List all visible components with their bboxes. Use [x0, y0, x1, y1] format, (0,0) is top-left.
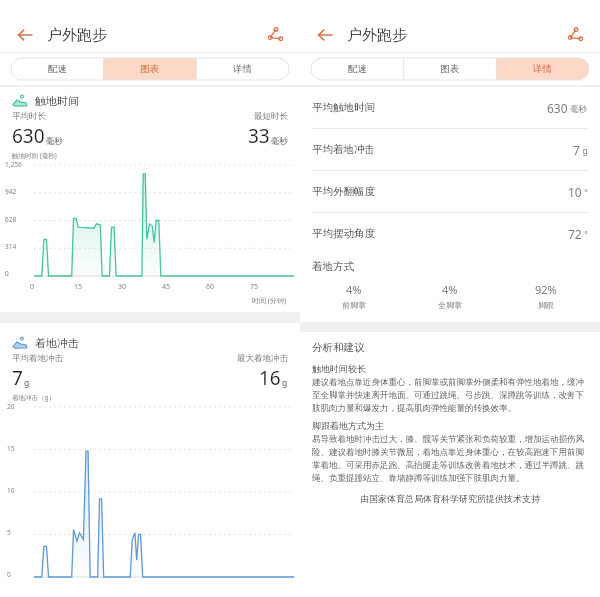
staticText: 30 — [118, 282, 127, 292]
staticText: 由国家体育总局体育科学研究所提供技术支持 — [312, 493, 588, 504]
staticText: 630 — [12, 123, 45, 149]
staticText: 触地时间较长 — [312, 363, 366, 374]
staticText: 平均着地冲击 — [312, 143, 375, 156]
staticText: 16 — [259, 365, 281, 391]
staticText: 图表 — [140, 63, 159, 75]
staticText: 户外跑步 — [347, 26, 407, 45]
staticText: 平均触地时间 — [312, 101, 375, 114]
staticText: 4% — [442, 282, 458, 297]
staticText: 1,256 — [5, 160, 22, 169]
staticText: 10 — [7, 486, 15, 495]
button[interactable]: 图表 — [103, 58, 196, 80]
staticText: 脚跟着地方式为主 — [312, 420, 384, 431]
staticText: 分析和建议 — [312, 341, 365, 354]
staticText: 5 — [7, 528, 11, 537]
button[interactable]: 平均外翻幅度 — [300, 171, 600, 213]
button[interactable]: 图表 — [403, 58, 496, 80]
staticText: 0 — [5, 269, 9, 278]
staticText: g — [580, 145, 588, 157]
staticText: 15 — [7, 444, 15, 453]
staticText: 平均时长 — [12, 111, 46, 122]
staticText: 户外跑步 — [47, 26, 107, 45]
button[interactable]: Share — [262, 22, 288, 48]
staticText: 628 — [5, 215, 17, 224]
staticText: 92% — [535, 282, 557, 297]
staticText: 图表 — [440, 63, 459, 75]
button[interactable]: 平均摆动角度 — [300, 213, 600, 254]
button[interactable]: 92% — [498, 282, 594, 310]
button[interactable]: 平均触地时间 — [300, 87, 600, 129]
staticText: 着地冲击（g） — [12, 393, 55, 402]
staticText: 着地方式 — [312, 260, 354, 273]
button[interactable]: 详情 — [496, 58, 589, 80]
staticText: 配速 — [348, 63, 367, 75]
staticText: 配速 — [48, 63, 67, 75]
staticText: 平均着地冲击 — [12, 353, 63, 364]
staticText: 全脚掌 — [438, 300, 462, 310]
staticText: 0 — [30, 282, 35, 292]
staticText: 毫秒 — [46, 136, 63, 147]
staticText: 45 — [162, 282, 171, 292]
staticText: 75 — [250, 282, 259, 292]
staticText: 0 — [7, 570, 11, 579]
staticText: 毫秒 — [568, 103, 588, 115]
staticText: 60 — [206, 282, 215, 292]
staticText: 33 — [248, 123, 270, 149]
staticText: 4% — [346, 282, 362, 297]
staticText: 前脚掌 — [342, 300, 366, 310]
button[interactable]: Back — [12, 22, 38, 48]
staticText: 最大着地冲击 — [237, 353, 288, 364]
staticText: 平均摆动角度 — [312, 227, 375, 240]
staticText: 最短时长 — [254, 111, 288, 122]
button[interactable]: 4% — [306, 282, 402, 310]
staticText: 20 — [7, 402, 15, 411]
button[interactable]: 详情 — [196, 58, 289, 80]
staticText: 7 — [573, 142, 580, 158]
staticText: 7 — [12, 365, 23, 391]
staticText: 15 — [74, 282, 83, 292]
staticText: g — [24, 377, 30, 389]
staticText: ° — [582, 229, 588, 241]
staticText: 脚跟 — [538, 300, 554, 310]
staticText: 630 — [547, 100, 568, 116]
staticText: 易导致着地时冲击过大，膝、髋等关节紧张和负荷较重，增加运动损伤风险。建议着地时膝… — [312, 434, 588, 483]
staticText: 详情 — [233, 63, 252, 75]
staticText: ° — [582, 187, 588, 199]
button[interactable]: 平均着地冲击 — [300, 129, 600, 171]
staticText: 着地冲击 — [35, 336, 79, 350]
button[interactable]: 配速 — [11, 58, 103, 80]
staticText: 72 — [568, 226, 582, 242]
staticText: 314 — [5, 242, 17, 251]
staticText: 平均外翻幅度 — [312, 185, 375, 198]
staticText: 建议着地点靠近身体重心，前脚掌或前脚掌外侧柔和有弹性地着地，缓冲至全脚掌并快速离… — [312, 377, 588, 413]
staticText: 942 — [5, 187, 17, 196]
staticText: 10 — [568, 184, 582, 200]
button[interactable]: Back — [312, 22, 338, 48]
staticText: 触地时间 — [35, 94, 79, 108]
staticText: 毫秒 — [271, 136, 288, 147]
staticText: 时间 (分钟) — [0, 296, 286, 306]
staticText: g — [282, 377, 288, 389]
staticText: 详情 — [533, 63, 552, 75]
staticText: 触地时间 (毫秒) — [12, 151, 57, 160]
button[interactable]: 4% — [402, 282, 498, 310]
button[interactable]: Share — [562, 22, 588, 48]
button[interactable]: 配速 — [311, 58, 403, 80]
